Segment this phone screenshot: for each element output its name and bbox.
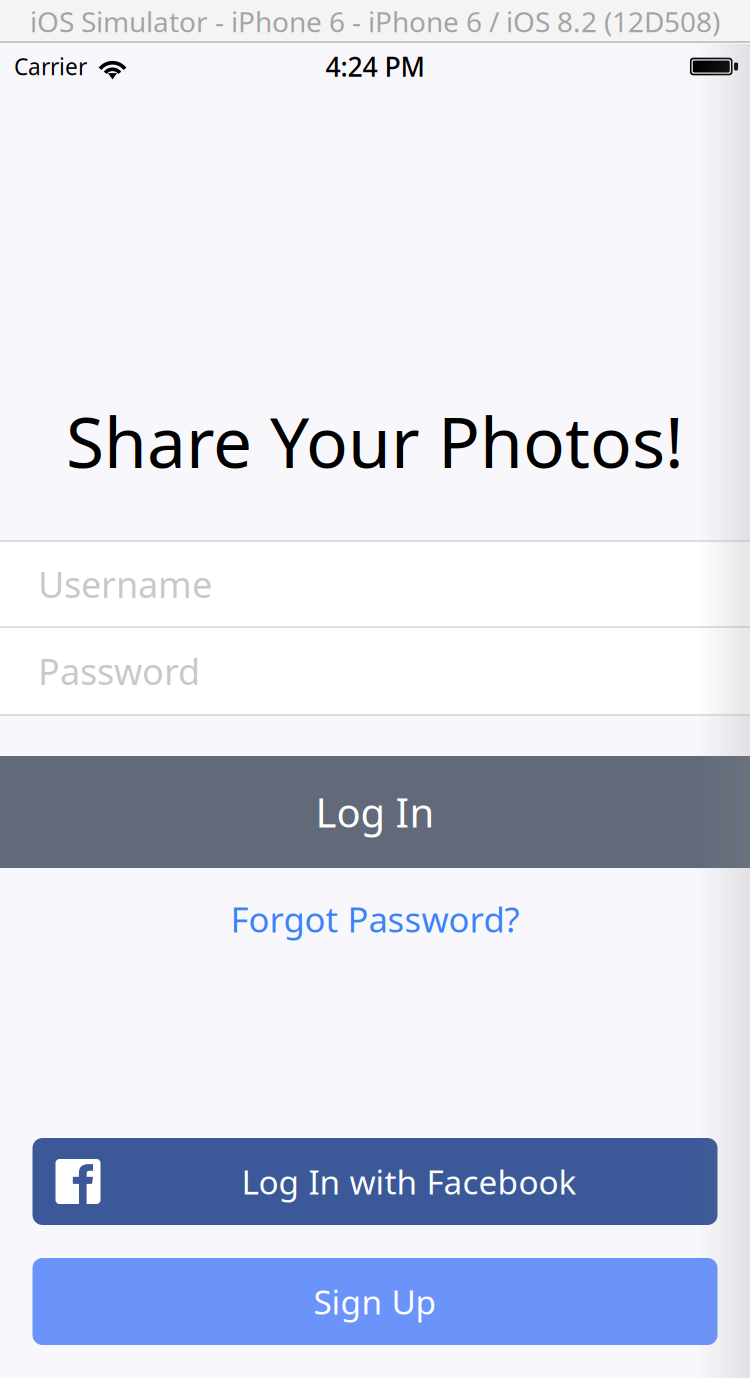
staticText: Forgot Password? — [230, 896, 519, 942]
staticText: Carrier — [14, 51, 87, 81]
button[interactable]: Username — [0, 542, 750, 626]
button[interactable]: Sign Up — [32, 1258, 717, 1345]
staticText: Log In — [315, 785, 434, 838]
staticText: 4:24 PM — [325, 49, 424, 84]
staticText: Share Your Photos! — [66, 395, 684, 487]
staticText: iOS Simulator - iPhone 6 - iPhone 6 / iO… — [30, 3, 720, 40]
staticText: Password — [38, 647, 200, 695]
staticText: Log In with Facebook — [241, 1159, 576, 1204]
button[interactable]: Forgot Password? — [0, 868, 750, 970]
staticText: Username — [38, 560, 212, 608]
button[interactable]: Password — [0, 628, 750, 714]
button[interactable]: Log In with Facebook — [32, 1138, 717, 1225]
button[interactable]: Log In — [0, 756, 750, 868]
staticText: Sign Up — [313, 1279, 436, 1324]
